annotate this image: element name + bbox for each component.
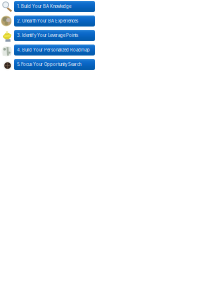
staticText: 4. Build Your Personalized Roadmap [17, 47, 90, 53]
button[interactable]: 3. Identify Your Leverage Points [14, 30, 95, 41]
button[interactable]: 2. Unearth Your BA Experiences [14, 15, 95, 26]
button[interactable]: 1. Build Your BA Knowledge [14, 1, 95, 12]
staticText: 3. Identify Your Leverage Points [17, 33, 78, 38]
staticText: 2. Unearth Your BA Experiences [17, 18, 78, 24]
staticText: 1. Build Your BA Knowledge [17, 4, 71, 9]
button[interactable]: 4. Build Your Personalized Roadmap [14, 44, 95, 55]
staticText: 5. Focus Your Opportunity Search [17, 62, 81, 67]
button[interactable]: 5. Focus Your Opportunity Search [14, 59, 95, 70]
